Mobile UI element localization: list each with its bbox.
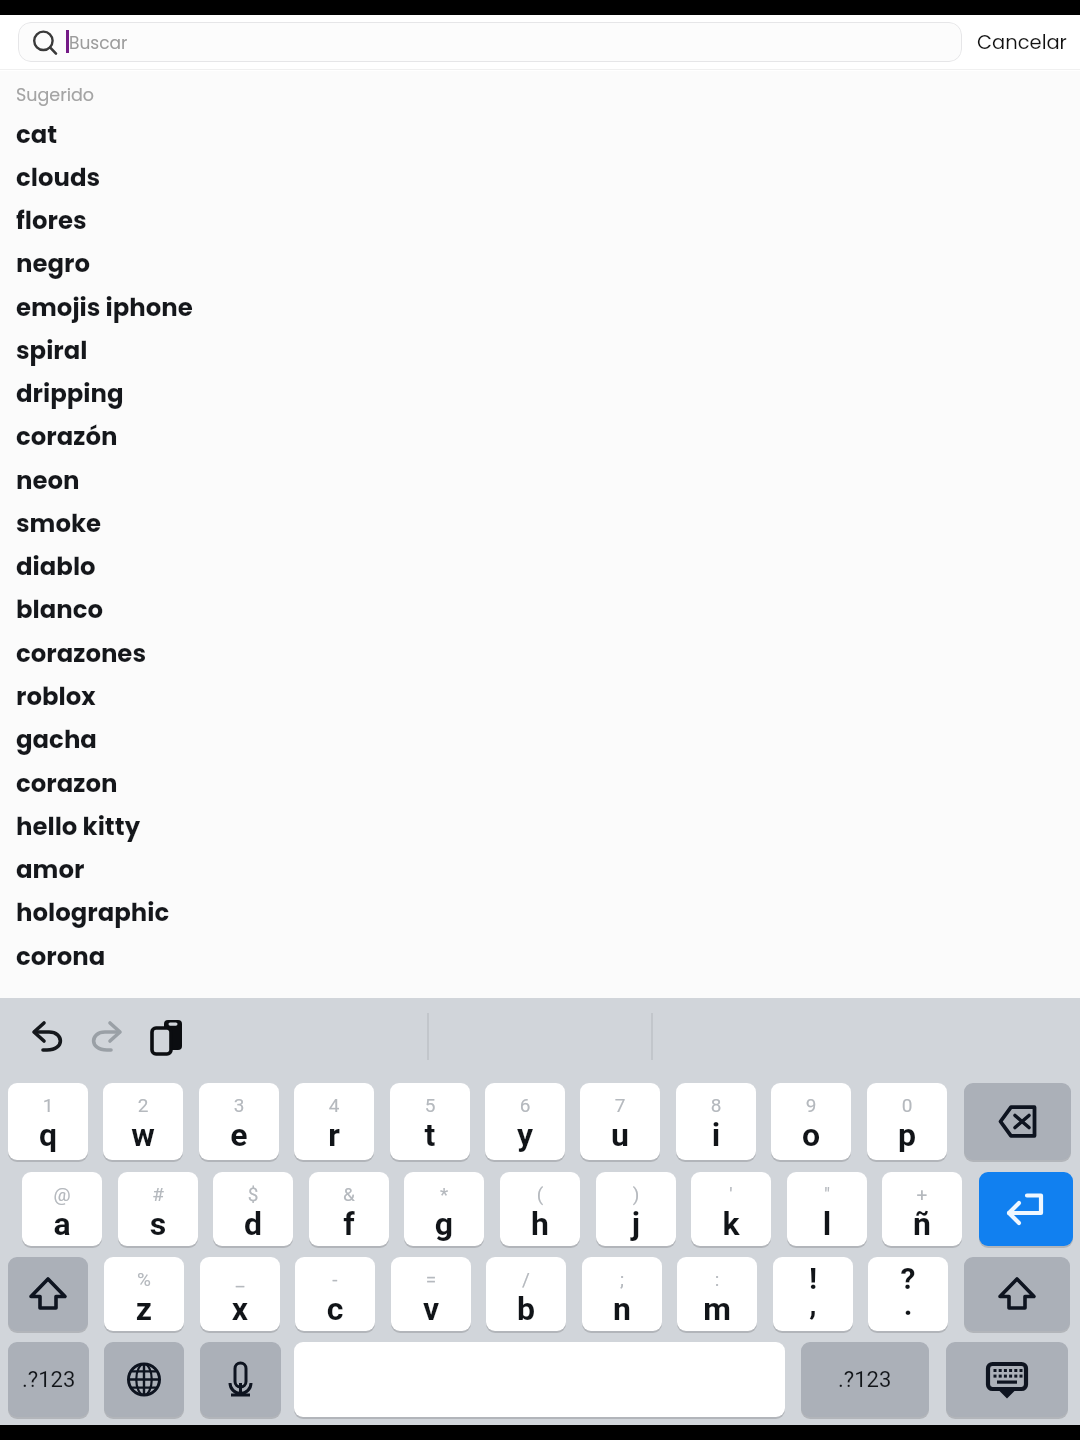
staticText: =: [391, 1268, 471, 1290]
button[interactable]: corona: [0, 934, 1080, 977]
button[interactable]: :: [677, 1257, 757, 1331]
button[interactable]: Enter: [979, 1172, 1073, 1246]
button[interactable]: ": [787, 1172, 867, 1246]
button[interactable]: +: [882, 1172, 962, 1246]
staticText: ,: [773, 1287, 853, 1322]
button[interactable]: amor: [0, 847, 1080, 890]
button[interactable]: *: [404, 1172, 484, 1246]
button[interactable]: gacha: [0, 717, 1080, 760]
staticText: .?123: [838, 1367, 892, 1393]
button[interactable]: 0: [867, 1083, 947, 1160]
button[interactable]: spiral: [0, 328, 1080, 371]
button[interactable]: ': [691, 1172, 771, 1246]
button[interactable]: dripping: [0, 371, 1080, 414]
staticText: $: [213, 1183, 293, 1205]
button[interactable]: clouds: [0, 155, 1080, 198]
button[interactable]: =: [391, 1257, 471, 1331]
staticText: ': [691, 1183, 771, 1205]
staticText: g: [404, 1205, 484, 1243]
button[interactable]: ): [596, 1172, 676, 1246]
button[interactable]: 8: [676, 1083, 756, 1160]
staticText: 5: [390, 1094, 470, 1116]
button[interactable]: Paste: [138, 1009, 194, 1065]
button[interactable]: cat: [0, 112, 1080, 155]
button[interactable]: hello kitty: [0, 804, 1080, 847]
staticText: l: [787, 1205, 867, 1243]
staticText: o: [771, 1116, 851, 1154]
staticText: 0: [867, 1094, 947, 1116]
staticText: negro: [16, 246, 91, 280]
staticText: ;: [582, 1268, 662, 1290]
button[interactable]: Language: [104, 1342, 184, 1417]
button[interactable]: /: [486, 1257, 566, 1331]
staticText: b: [486, 1290, 566, 1328]
staticText: cat: [16, 117, 58, 151]
button[interactable]: negro: [0, 241, 1080, 284]
staticText: y: [485, 1116, 565, 1154]
button[interactable]: 7: [580, 1083, 660, 1160]
button[interactable]: ;: [582, 1257, 662, 1331]
staticText: c: [295, 1290, 375, 1328]
button[interactable]: .?123: [801, 1342, 929, 1417]
button[interactable]: 5: [390, 1083, 470, 1160]
staticText: j: [596, 1205, 676, 1243]
button[interactable]: 1: [8, 1083, 88, 1160]
button[interactable]: flores: [0, 198, 1080, 241]
button[interactable]: corazones: [0, 631, 1080, 674]
button[interactable]: corazón: [0, 414, 1080, 457]
button[interactable]: ?: [868, 1257, 948, 1331]
button[interactable]: 3: [199, 1083, 279, 1160]
staticText: p: [867, 1116, 947, 1154]
button[interactable]: neon: [0, 458, 1080, 501]
button[interactable]: .?123: [8, 1342, 89, 1417]
staticText: v: [391, 1290, 471, 1328]
button[interactable]: 6: [485, 1083, 565, 1160]
staticText: @: [22, 1183, 102, 1205]
button[interactable]: #: [118, 1172, 198, 1246]
button[interactable]: _: [200, 1257, 280, 1331]
button[interactable]: Backspace: [964, 1083, 1071, 1160]
button[interactable]: roblox: [0, 674, 1080, 717]
button[interactable]: Undo: [20, 1009, 76, 1065]
button[interactable]: $: [213, 1172, 293, 1246]
staticText: 7: [580, 1094, 660, 1116]
button[interactable]: holographic: [0, 890, 1080, 933]
button[interactable]: emojis iphone: [0, 285, 1080, 328]
button[interactable]: Shift: [964, 1257, 1070, 1331]
staticText: 8: [676, 1094, 756, 1116]
staticText: r: [294, 1116, 374, 1154]
staticText: flores: [16, 203, 87, 237]
staticText: ?: [868, 1261, 948, 1296]
button[interactable]: 2: [103, 1083, 183, 1160]
button[interactable]: &: [309, 1172, 389, 1246]
button[interactable]: Cancelar: [966, 20, 1078, 64]
button[interactable]: corazon: [0, 761, 1080, 804]
button[interactable]: smoke: [0, 501, 1080, 544]
staticText: .?123: [22, 1367, 76, 1393]
staticText: ñ: [882, 1205, 962, 1243]
staticText: corazon: [16, 766, 118, 800]
button[interactable]: %: [104, 1257, 184, 1331]
staticText: s: [118, 1205, 198, 1243]
button[interactable]: @: [22, 1172, 102, 1246]
staticText: k: [691, 1205, 771, 1243]
button[interactable]: Redo: [78, 1009, 134, 1065]
button[interactable]: blanco: [0, 587, 1080, 630]
staticText: gacha: [16, 722, 97, 756]
button[interactable]: Voice input: [200, 1342, 281, 1417]
button[interactable]: Shift: [8, 1257, 88, 1331]
button[interactable]: (: [500, 1172, 580, 1246]
button[interactable]: Buscar: [18, 22, 962, 62]
staticText: z: [104, 1290, 184, 1328]
button[interactable]: Hide keyboard: [946, 1342, 1068, 1417]
staticText: /: [486, 1268, 566, 1290]
staticText: corona: [16, 939, 106, 973]
button[interactable]: -: [295, 1257, 375, 1331]
button[interactable]: 9: [771, 1083, 851, 1160]
button[interactable]: 4: [294, 1083, 374, 1160]
button[interactable]: diablo: [0, 544, 1080, 587]
staticText: Cancelar: [977, 29, 1067, 56]
staticText: spiral: [16, 333, 88, 367]
button[interactable]: !: [773, 1257, 853, 1331]
